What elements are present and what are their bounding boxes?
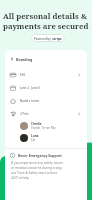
staticText: Poodle, Terrier Mix (31, 126, 56, 130)
staticText: stripe (52, 36, 62, 41)
button[interactable]: 2 Pets (5, 107, 87, 120)
button[interactable]: Powered by (31, 34, 65, 42)
staticText: Nadia's home (20, 99, 40, 103)
staticText: Powered by (34, 37, 52, 41)
other: Back (10, 57, 14, 61)
button[interactable]: Back (5, 50, 87, 68)
staticText: Boarding (16, 57, 33, 62)
button[interactable]: June 4 - June 6 (5, 81, 87, 94)
staticText: payments are secured (3, 21, 89, 31)
staticText: If you experience any safety issues or m… (11, 161, 64, 180)
button[interactable]: Luna (5, 132, 87, 144)
staticText: Luna (31, 134, 39, 138)
staticText: June 4 - June 6 (20, 86, 40, 90)
button[interactable]: Nadia's home (5, 94, 87, 107)
staticText: Cat (31, 138, 36, 142)
staticText: Rover Emergency Support (18, 153, 62, 158)
button[interactable]: $65 (5, 68, 87, 81)
staticText: All personal details & (3, 11, 87, 21)
button[interactable]: Rover Emergency Support (5, 153, 87, 158)
staticText: $65 (20, 73, 26, 77)
button[interactable]: Charlie (5, 120, 87, 132)
staticText: Charlie (31, 122, 42, 126)
staticText: 2 Pets (20, 112, 29, 116)
